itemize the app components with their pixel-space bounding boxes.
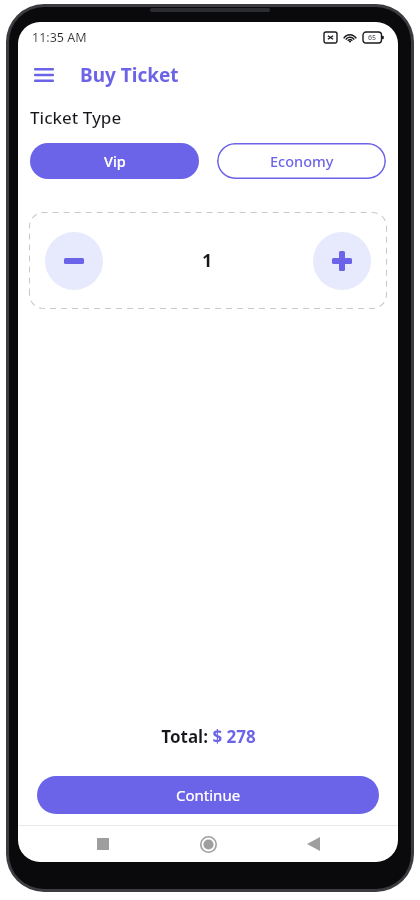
button[interactable]: Vip [30, 143, 199, 179]
staticText: Continue [176, 785, 241, 805]
staticText: Total: $ 278 [161, 725, 256, 748]
staticText: Economy [270, 151, 334, 171]
button[interactable]: Open navigation menu [24, 55, 64, 95]
button[interactable]: Continue [37, 776, 379, 814]
button[interactable]: Recent apps [83, 826, 123, 862]
staticText: 1 [202, 248, 213, 273]
staticText: 65 [368, 33, 377, 43]
staticText: Buy Ticket [80, 62, 179, 88]
staticText: 11:35 AM [32, 29, 87, 46]
button[interactable]: Back [293, 826, 333, 862]
staticText: Vip [104, 151, 126, 171]
staticText: Ticket Type [30, 106, 122, 129]
button[interactable]: Economy [217, 143, 386, 179]
button[interactable]: Decrease ticket count [45, 232, 103, 290]
button[interactable]: Increase ticket count [313, 232, 371, 290]
button[interactable]: Home [188, 826, 228, 862]
